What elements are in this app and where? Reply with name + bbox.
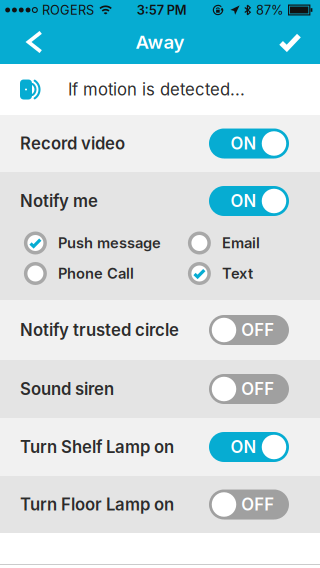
- button[interactable]: Record video: [0, 115, 320, 172]
- staticText: Sound siren: [20, 379, 114, 399]
- staticText: Text: [222, 265, 253, 282]
- button[interactable]: Text: [188, 262, 298, 285]
- staticText: ON: [231, 133, 257, 154]
- staticText: Phone Call: [58, 265, 134, 282]
- button[interactable]: Email: [188, 231, 298, 254]
- button[interactable]: Done: [268, 20, 312, 64]
- staticText: OFF: [241, 379, 274, 399]
- staticText: Record video: [20, 133, 125, 154]
- button[interactable]: Notify trusted circle: [0, 300, 320, 360]
- staticText: Turn Shelf Lamp on: [20, 437, 174, 457]
- staticText: Notify me: [20, 191, 98, 211]
- button[interactable]: Push message: [24, 231, 188, 254]
- button[interactable]: Turn Floor Lamp on: [0, 476, 320, 533]
- staticText: OFF: [241, 320, 274, 340]
- button[interactable]: Notify me: [0, 172, 320, 230]
- staticText: Turn Floor Lamp on: [20, 494, 174, 515]
- staticText: ON: [231, 437, 257, 457]
- button[interactable]: Turn Shelf Lamp on: [0, 418, 320, 476]
- staticText: Push message: [58, 234, 161, 252]
- staticText: Email: [222, 234, 260, 252]
- staticText: Away: [135, 31, 184, 53]
- button[interactable]: Back: [12, 20, 56, 64]
- staticText: Notify trusted circle: [20, 320, 179, 340]
- staticText: ROGERS: [42, 2, 94, 18]
- staticText: If motion is detected...: [68, 79, 245, 100]
- staticText: OFF: [241, 494, 274, 515]
- button[interactable]: Phone Call: [24, 262, 188, 285]
- button[interactable]: Sound siren: [0, 360, 320, 418]
- staticText: ON: [231, 191, 257, 211]
- staticText: 3:57 PM: [137, 2, 187, 18]
- staticText: 87%: [256, 2, 284, 18]
